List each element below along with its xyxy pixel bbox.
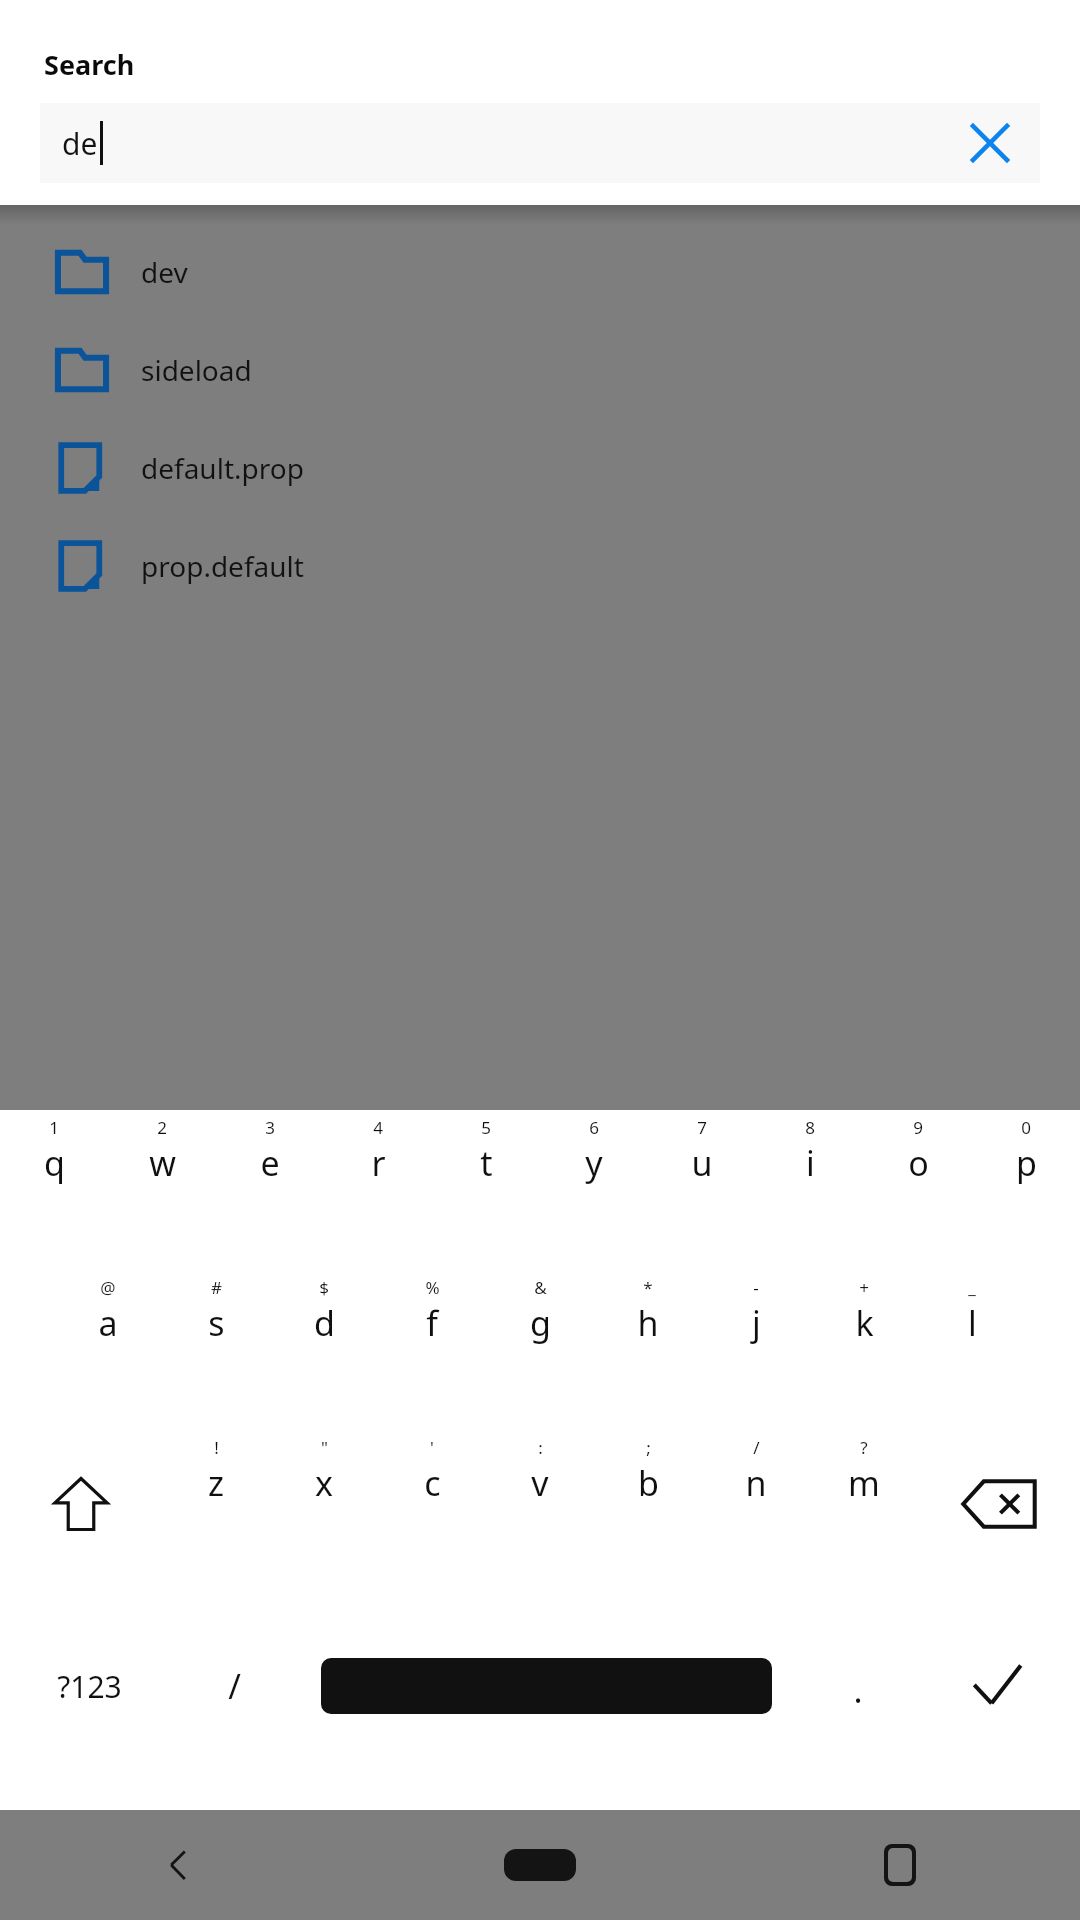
staticText: t <box>480 1140 493 1186</box>
button[interactable]: 4 <box>324 1110 432 1270</box>
staticText: p <box>1016 1140 1037 1186</box>
staticText: k <box>855 1300 874 1346</box>
staticText: 8 <box>805 1116 815 1138</box>
staticText: * <box>643 1276 653 1298</box>
button[interactable]: dev <box>0 223 1080 321</box>
staticText: q <box>44 1140 65 1186</box>
button[interactable]: 8 <box>756 1110 864 1270</box>
staticText: h <box>637 1300 659 1346</box>
staticText: dev <box>141 253 188 291</box>
staticText: + <box>859 1276 869 1298</box>
button[interactable]: & <box>486 1270 594 1430</box>
button[interactable]: Recent apps <box>720 1810 1080 1920</box>
staticText: % <box>425 1276 440 1298</box>
staticText: c <box>424 1460 441 1506</box>
staticText: w <box>149 1140 176 1186</box>
button[interactable]: ?123 <box>0 1590 179 1810</box>
staticText: g <box>530 1300 551 1346</box>
button[interactable]: Shift <box>0 1430 162 1590</box>
staticText: @ <box>100 1276 116 1298</box>
button[interactable]: ; <box>594 1430 702 1590</box>
staticText: 0 <box>1021 1116 1031 1138</box>
button[interactable]: Clear search <box>954 107 1026 179</box>
staticText: a <box>98 1300 118 1346</box>
staticText: e <box>260 1140 280 1186</box>
button[interactable]: # <box>162 1270 270 1430</box>
button[interactable]: Space <box>290 1590 802 1810</box>
staticText: prop.default <box>141 547 304 585</box>
staticText: r <box>371 1140 386 1186</box>
button[interactable]: 9 <box>864 1110 972 1270</box>
button[interactable]: Backspace <box>918 1430 1080 1590</box>
button[interactable]: ! <box>162 1430 270 1590</box>
button[interactable]: 6 <box>540 1110 648 1270</box>
staticText: m <box>848 1460 880 1506</box>
staticText: i <box>806 1140 815 1186</box>
button[interactable]: $ <box>270 1270 378 1430</box>
button[interactable]: / <box>702 1430 810 1590</box>
staticText: z <box>208 1460 224 1506</box>
button[interactable]: 7 <box>648 1110 756 1270</box>
button[interactable]: % <box>378 1270 486 1430</box>
staticText: ; <box>646 1436 651 1458</box>
staticText: x <box>315 1460 333 1506</box>
staticText: 6 <box>589 1116 599 1138</box>
staticText: ! <box>214 1436 219 1458</box>
staticText: o <box>908 1140 929 1186</box>
staticText: _ <box>968 1276 976 1298</box>
button[interactable]: _ <box>918 1270 1026 1430</box>
button[interactable]: 3 <box>216 1110 324 1270</box>
staticText: Search <box>44 46 135 83</box>
staticText: 9 <box>913 1116 923 1138</box>
staticText: b <box>638 1460 659 1506</box>
button[interactable]: de <box>40 103 1040 183</box>
button[interactable]: : <box>486 1430 594 1590</box>
staticText: " <box>321 1436 328 1458</box>
staticText: - <box>753 1276 759 1298</box>
button[interactable]: sideload <box>0 321 1080 419</box>
button[interactable]: ? <box>810 1430 918 1590</box>
button[interactable]: * <box>594 1270 702 1430</box>
button[interactable]: Home <box>360 1810 720 1920</box>
staticText: 3 <box>265 1116 275 1138</box>
button[interactable]: + <box>810 1270 918 1430</box>
staticText: d <box>314 1300 335 1346</box>
staticText: 1 <box>49 1116 59 1138</box>
staticText: 5 <box>481 1116 491 1138</box>
staticText: n <box>745 1460 767 1506</box>
button[interactable]: default.prop <box>0 419 1080 517</box>
staticText: v <box>531 1460 549 1506</box>
button[interactable]: 2 <box>108 1110 216 1270</box>
staticText: sideload <box>141 351 252 389</box>
staticText: l <box>968 1300 977 1346</box>
button[interactable]: - <box>702 1270 810 1430</box>
button[interactable]: . <box>802 1590 913 1810</box>
staticText: : <box>538 1436 543 1458</box>
staticText: 2 <box>157 1116 167 1138</box>
staticText: default.prop <box>141 449 304 487</box>
staticText: y <box>585 1140 603 1186</box>
staticText: $ <box>319 1276 329 1298</box>
staticText: 7 <box>697 1116 707 1138</box>
staticText: u <box>691 1140 713 1186</box>
staticText: / <box>228 1663 241 1709</box>
staticText: ?123 <box>57 1666 122 1707</box>
button[interactable]: @ <box>54 1270 162 1430</box>
staticText: # <box>211 1276 222 1298</box>
button[interactable]: Back <box>0 1810 360 1920</box>
staticText: s <box>208 1300 225 1346</box>
button[interactable]: prop.default <box>0 517 1080 615</box>
button[interactable]: " <box>270 1430 378 1590</box>
button[interactable]: 1 <box>0 1110 108 1270</box>
staticText: f <box>426 1300 438 1346</box>
staticText: j <box>752 1300 761 1346</box>
staticText: / <box>753 1436 760 1458</box>
button[interactable]: Done <box>913 1590 1080 1810</box>
button[interactable]: ' <box>378 1430 486 1590</box>
staticText: ? <box>860 1436 868 1458</box>
button[interactable]: / <box>179 1590 290 1810</box>
button[interactable]: 0 <box>972 1110 1080 1270</box>
button[interactable]: 5 <box>432 1110 540 1270</box>
staticText: 4 <box>373 1116 383 1138</box>
staticText: de <box>62 123 98 164</box>
